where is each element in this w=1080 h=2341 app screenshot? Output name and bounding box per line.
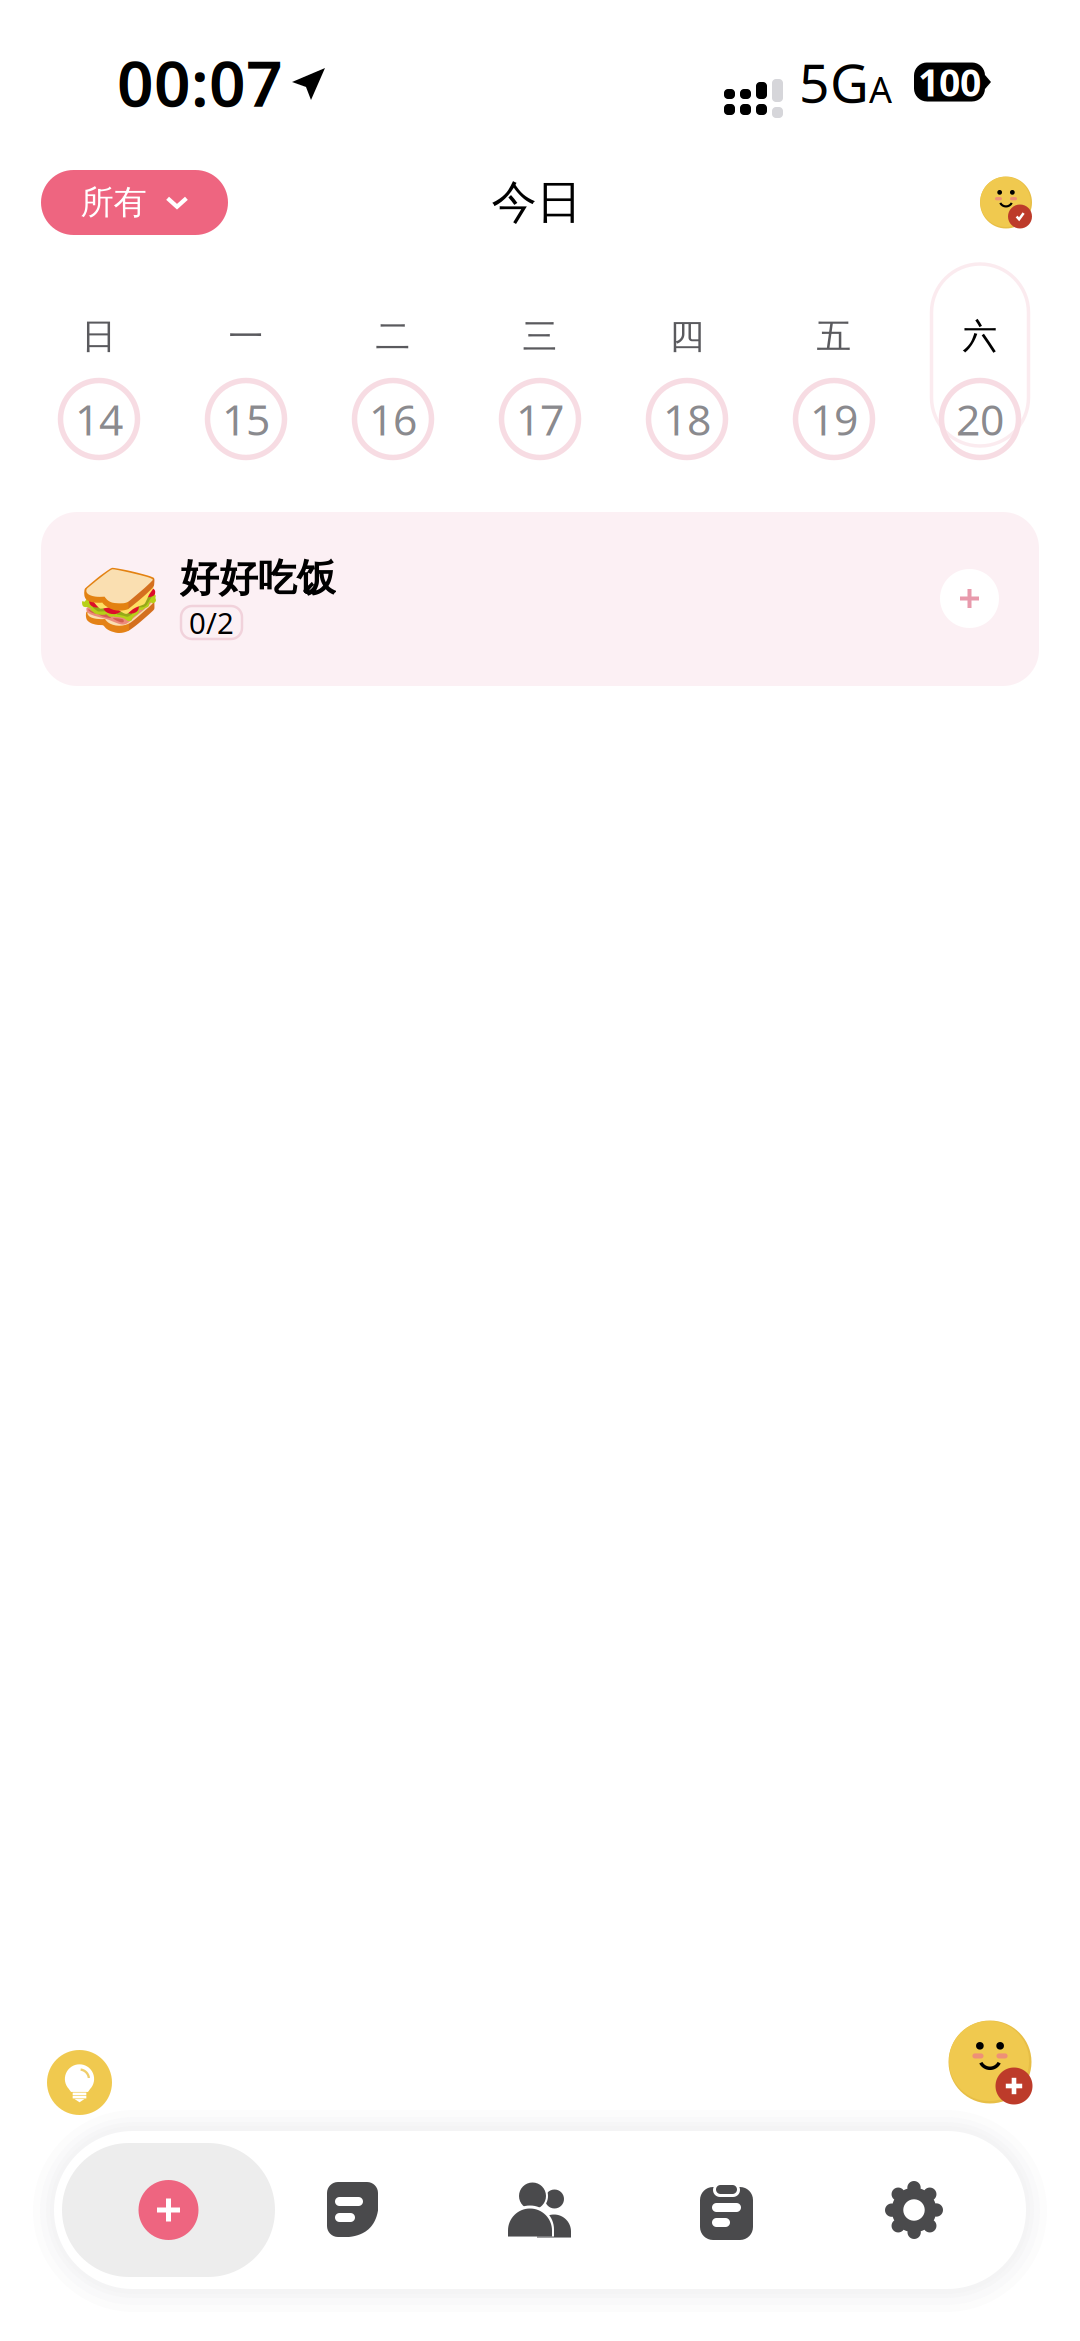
button[interactable]: Friends — [495, 2165, 559, 2225]
button[interactable]: Tips — [47, 2050, 112, 2115]
staticText: 好好吃饭 — [180, 554, 336, 602]
staticText: 17 — [516, 391, 564, 447]
staticText: 18 — [663, 391, 711, 447]
button[interactable]: 一 — [197, 264, 294, 446]
staticText: 三 — [522, 315, 557, 358]
button[interactable]: Add friend — [948, 2020, 1032, 2104]
button[interactable]: Settings — [885, 2181, 943, 2239]
button[interactable]: 日 — [50, 264, 147, 446]
staticText: 一 — [228, 315, 263, 358]
staticText: 14 — [75, 391, 123, 447]
staticText: 20 — [956, 391, 1004, 447]
staticText: 五 — [816, 315, 851, 358]
staticText: 所有 — [80, 182, 146, 223]
button[interactable]: Notes — [327, 2182, 378, 2237]
button[interactable]: 五 — [785, 264, 882, 446]
staticText: 今日 — [491, 175, 581, 230]
staticText: 19 — [810, 391, 858, 447]
staticText: A — [869, 65, 892, 113]
staticText: 二 — [375, 315, 410, 358]
button[interactable]: 四 — [638, 264, 735, 446]
button[interactable]: 六 — [931, 264, 1028, 446]
staticText: 六 — [962, 315, 997, 358]
staticText: 15 — [222, 391, 270, 447]
staticText: 16 — [369, 391, 417, 447]
staticText: 00:07 — [117, 39, 283, 124]
button[interactable]: 所有 — [41, 170, 228, 235]
staticText: 四 — [669, 315, 704, 358]
button[interactable]: 🥪 — [41, 512, 1039, 686]
staticText: 日 — [81, 315, 116, 358]
staticText: 5G — [799, 47, 869, 117]
button[interactable]: Add — [62, 2143, 275, 2277]
staticText: 0/2 — [189, 603, 234, 642]
staticText: 🥪 — [77, 562, 160, 638]
button[interactable]: 三 — [491, 264, 588, 446]
button[interactable]: 二 — [344, 264, 441, 446]
button[interactable]: Profile — [980, 176, 1032, 228]
staticText: 100 — [918, 57, 981, 107]
button[interactable]: Tasks — [700, 2181, 753, 2238]
